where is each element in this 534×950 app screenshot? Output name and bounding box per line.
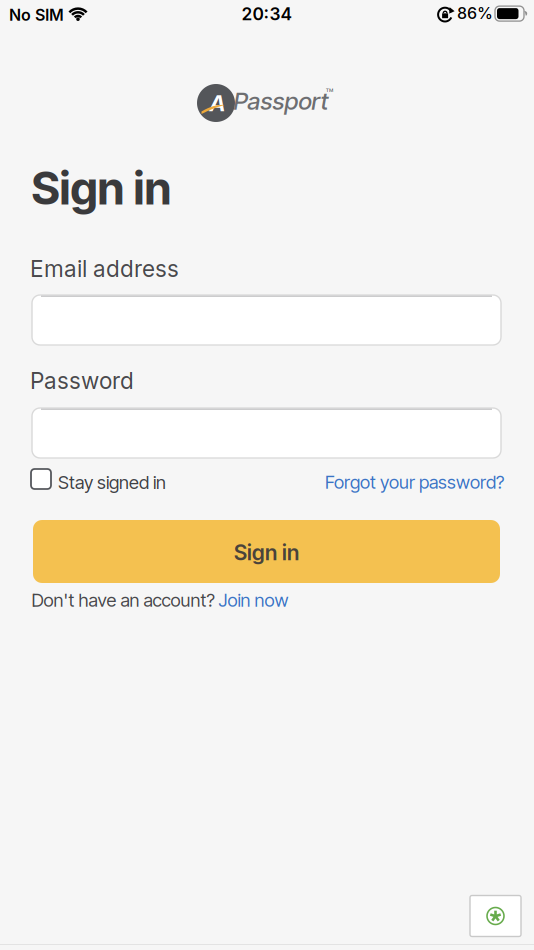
staticText: Stay signed in <box>58 471 166 493</box>
button[interactable]: Accessibility options <box>470 895 521 936</box>
staticText: Password <box>30 367 134 394</box>
button[interactable]: Join now <box>218 589 288 611</box>
button[interactable]: Sign in <box>33 520 500 583</box>
staticText: Join now <box>218 589 288 611</box>
staticText: Sign in <box>234 540 299 565</box>
staticText: 86% <box>457 3 493 23</box>
staticText: Email address <box>30 255 179 282</box>
staticText: Passport <box>233 86 328 115</box>
staticText: A <box>209 90 225 117</box>
staticText: Don't have an account? <box>31 589 214 611</box>
staticText: Sign in <box>31 160 171 215</box>
button[interactable]: Email address <box>32 295 501 345</box>
staticText: Forgot your password? <box>325 471 504 493</box>
button[interactable]: Stay signed in <box>31 469 139 491</box>
button[interactable]: Forgot your password? <box>325 471 504 493</box>
button[interactable]: Password <box>32 408 501 458</box>
staticText: No SIM <box>9 5 64 25</box>
staticText: 20:34 <box>241 3 292 24</box>
staticText: ™ <box>325 85 333 102</box>
